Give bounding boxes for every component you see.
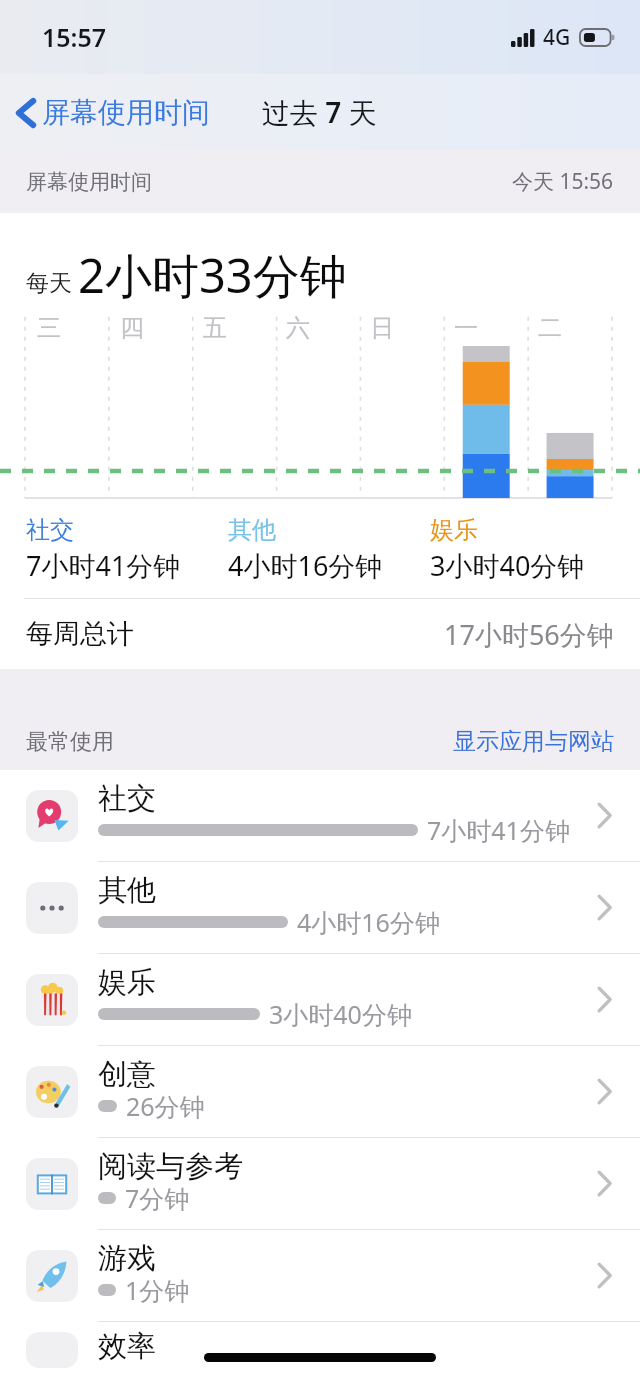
- staticText: 效率: [98, 1328, 156, 1365]
- button[interactable]: 娱乐: [0, 954, 640, 1046]
- staticText: 日: [370, 313, 394, 343]
- other: 查看阅读与参考详情: [597, 1170, 612, 1197]
- staticText: 其他: [228, 515, 276, 545]
- staticText: 7小时41分钟: [26, 547, 181, 584]
- button[interactable]: 屏幕使用时间: [0, 87, 220, 138]
- button[interactable]: 社交: [0, 770, 640, 862]
- other: 查看社交详情: [597, 802, 612, 829]
- staticText: 五: [203, 313, 227, 343]
- staticText: 一: [454, 313, 478, 343]
- button[interactable]: 显示应用与网站: [427, 721, 640, 762]
- button[interactable]: 创意: [0, 1046, 640, 1138]
- staticText: 26分钟: [126, 1089, 205, 1123]
- staticText: 17小时56分钟: [444, 616, 614, 653]
- staticText: 显示应用与网站: [453, 727, 614, 756]
- staticText: 创意: [98, 1056, 156, 1093]
- button[interactable]: 阅读与参考: [0, 1138, 640, 1230]
- staticText: 4小时16分钟: [228, 547, 383, 584]
- staticText: 1分钟: [125, 1273, 190, 1307]
- staticText: 7小时41分钟: [427, 813, 570, 847]
- other: 查看创意详情: [597, 1078, 612, 1105]
- staticText: 过去 7 天: [262, 93, 377, 131]
- staticText: 4小时16分钟: [297, 905, 440, 939]
- staticText: 六: [286, 313, 310, 343]
- button[interactable]: 游戏: [0, 1230, 640, 1322]
- staticText: 2小时33分钟: [78, 243, 347, 307]
- staticText: 屏幕使用时间: [26, 169, 152, 195]
- staticText: 三: [37, 313, 61, 343]
- staticText: 社交: [26, 515, 74, 545]
- staticText: 娱乐: [98, 964, 156, 1001]
- staticText: 二: [538, 313, 562, 343]
- staticText: 3小时40分钟: [269, 997, 412, 1031]
- staticText: 今天 15:56: [512, 167, 614, 196]
- staticText: 阅读与参考: [98, 1148, 243, 1185]
- other: 查看游戏详情: [597, 1262, 612, 1289]
- staticText: 7分钟: [125, 1181, 190, 1215]
- staticText: 4G: [543, 23, 571, 52]
- staticText: 3小时40分钟: [430, 547, 585, 584]
- staticText: 屏幕使用时间: [42, 95, 210, 130]
- staticText: 社交: [98, 780, 156, 817]
- staticText: 每天: [26, 269, 72, 298]
- staticText: 游戏: [98, 1240, 156, 1277]
- staticText: 其他: [98, 872, 156, 909]
- staticText: 每周总计: [26, 617, 134, 651]
- button[interactable]: 其他: [0, 862, 640, 954]
- other: 查看娱乐详情: [597, 986, 612, 1013]
- staticText: 15:57: [42, 20, 107, 54]
- staticText: 最常使用: [26, 728, 114, 756]
- staticText: 四: [120, 313, 144, 343]
- staticText: 娱乐: [430, 515, 478, 545]
- other: 查看其他详情: [597, 894, 612, 921]
